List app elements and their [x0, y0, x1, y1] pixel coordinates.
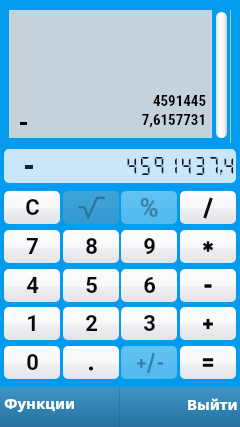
button[interactable]: 5: [63, 269, 119, 302]
staticText: 4591437,4: [125, 154, 236, 176]
button[interactable]: 2: [63, 307, 119, 340]
button[interactable]: 1: [4, 307, 60, 340]
button[interactable]: Функции: [0, 387, 120, 427]
button[interactable]: Decimal point: [63, 346, 119, 379]
staticText: 9: [143, 234, 156, 260]
button[interactable]: 0: [4, 346, 60, 379]
staticText: 4591445: [9, 92, 206, 110]
staticText: Выйти: [187, 394, 238, 414]
staticText: 3: [143, 311, 156, 337]
button[interactable]: C: [4, 191, 60, 224]
button[interactable]: Square root: [63, 191, 119, 224]
staticText: 6: [143, 273, 156, 299]
button[interactable]: Equals: [180, 346, 236, 379]
staticText: 5: [85, 273, 98, 299]
staticText: 7: [26, 234, 39, 260]
staticText: Функции: [4, 393, 76, 413]
button[interactable]: 4591437,4: [4, 149, 236, 183]
button[interactable]: Divide: [180, 191, 236, 224]
staticText: 1: [26, 311, 39, 337]
button[interactable]: Multiply: [180, 230, 236, 263]
button[interactable]: Minus: [180, 269, 236, 302]
staticText: %: [139, 193, 159, 223]
button[interactable]: Plus minus: [121, 346, 177, 379]
staticText: 4: [26, 273, 39, 299]
button[interactable]: 6: [121, 269, 177, 302]
staticText: 8: [85, 234, 98, 260]
button[interactable]: Выйти: [120, 387, 240, 427]
staticText: 2: [85, 311, 98, 337]
button[interactable]: Plus: [180, 307, 236, 340]
button[interactable]: 4: [4, 269, 60, 302]
button[interactable]: Percent: [121, 191, 177, 224]
staticText: 0: [26, 350, 39, 376]
button[interactable]: 7: [4, 230, 60, 263]
button[interactable]: 8: [63, 230, 119, 263]
button[interactable]: 9: [121, 230, 177, 263]
staticText: C: [25, 195, 40, 221]
staticText: 7,6157731: [9, 111, 206, 129]
button[interactable]: 3: [121, 307, 177, 340]
